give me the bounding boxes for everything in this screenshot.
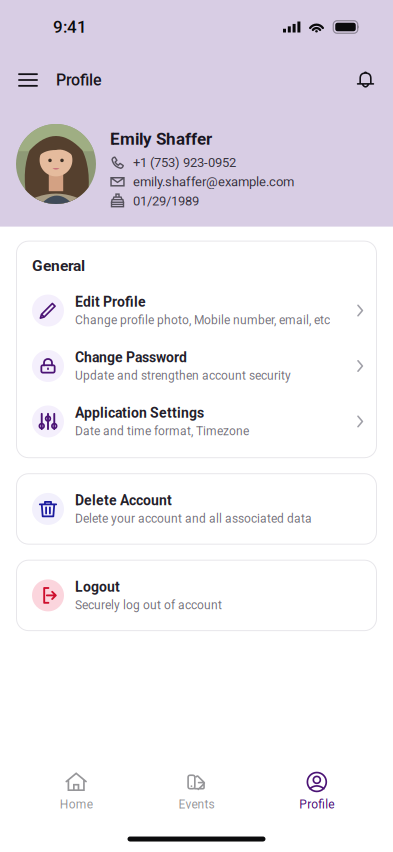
button[interactable]: Delete Account — [16, 481, 377, 537]
staticText: Update and strengthen account security — [75, 369, 291, 383]
button[interactable]: Logout — [16, 568, 377, 623]
staticText: Date and time format, Timezone — [75, 424, 249, 438]
button[interactable]: Events — [136, 751, 257, 815]
staticText: +1 (753) 923-0952 — [133, 155, 236, 170]
staticText: Delete Account — [75, 492, 172, 509]
staticText: Change Password — [75, 349, 187, 366]
staticText: General — [32, 257, 85, 275]
staticText: Logout — [75, 579, 120, 595]
staticText: Change profile photo, Mobile number, ema… — [75, 313, 330, 327]
staticText: 9:41 — [53, 17, 87, 37]
staticText: Events — [178, 797, 214, 812]
staticText: 01/29/1989 — [133, 193, 199, 209]
staticText: Home — [60, 797, 93, 812]
staticText: Emily Shaffer — [110, 129, 212, 149]
staticText: Delete your account and all associated d… — [75, 512, 312, 526]
button[interactable]: Edit Profile — [16, 283, 377, 338]
button[interactable]: Home — [16, 751, 136, 815]
staticText: Securely log out of account — [75, 598, 222, 612]
button[interactable]: Notifications — [344, 54, 393, 106]
button[interactable]: Profile — [257, 751, 377, 815]
staticText: Profile — [299, 797, 334, 812]
button[interactable]: Menu — [0, 54, 56, 106]
staticText: Profile — [56, 71, 102, 89]
staticText: emily.shaffer@example.com — [133, 174, 294, 189]
staticText: Application Settings — [75, 405, 204, 421]
button[interactable]: Application Settings — [16, 394, 377, 449]
staticText: Edit Profile — [75, 294, 146, 310]
button[interactable]: Change Password — [16, 338, 377, 394]
